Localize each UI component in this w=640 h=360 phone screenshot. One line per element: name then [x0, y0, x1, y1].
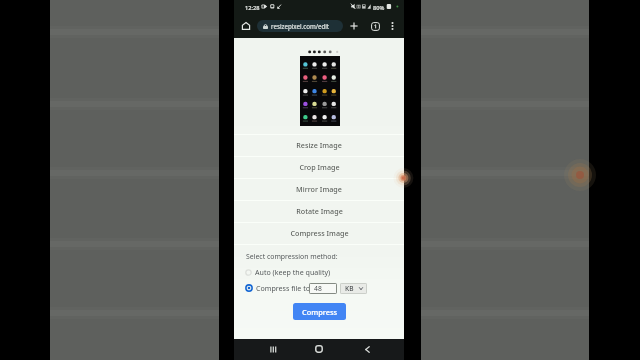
button[interactable]: More options	[386, 19, 399, 32]
staticText: Select compression method:	[246, 252, 338, 261]
staticText: Resize Image	[296, 140, 342, 150]
staticText: Compress file to	[256, 283, 310, 293]
button[interactable]: 48	[309, 283, 337, 294]
staticText: Rotate Image	[296, 206, 343, 216]
button[interactable]: Recent apps	[263, 339, 283, 359]
button[interactable]: Home	[239, 19, 253, 33]
button[interactable]: Mirror Image	[234, 179, 404, 200]
staticText: 48	[314, 284, 322, 293]
button[interactable]: Compress file to	[245, 283, 310, 293]
staticText: Mirror Image	[296, 184, 342, 194]
button[interactable]: Home	[309, 339, 329, 359]
button[interactable]: Resize Image	[234, 135, 404, 156]
button[interactable]: KB	[340, 283, 367, 294]
staticText: resizepixel.com/edit	[271, 22, 330, 30]
staticText: KB	[345, 284, 354, 293]
staticText: 12:28	[245, 4, 260, 12]
staticText: Compress Image	[290, 228, 349, 238]
button[interactable]: resizepixel.com/edit	[257, 20, 343, 32]
button[interactable]: Compress Image	[234, 223, 404, 244]
button[interactable]: Compress	[293, 303, 346, 320]
staticText: Auto (keep the quality)	[255, 267, 331, 277]
button[interactable]: Auto (keep the quality)	[245, 267, 331, 277]
staticText: Compress	[302, 307, 338, 317]
button[interactable]: Crop Image	[234, 157, 404, 178]
button[interactable]: Rotate Image	[234, 201, 404, 222]
button[interactable]: New tab	[347, 19, 361, 33]
button[interactable]: Tabs	[368, 19, 382, 33]
staticText: 80%	[373, 4, 385, 12]
button[interactable]: Back	[357, 339, 377, 359]
staticText: Crop Image	[299, 162, 340, 172]
